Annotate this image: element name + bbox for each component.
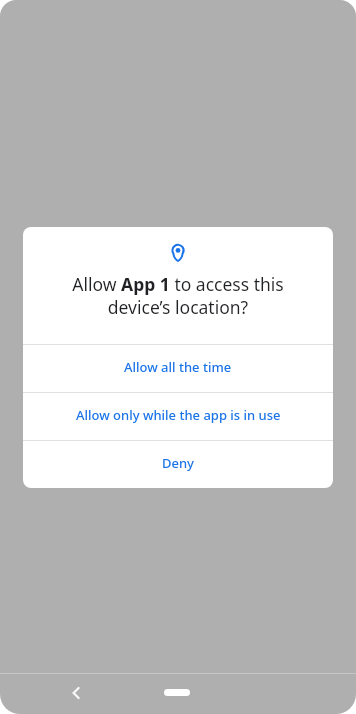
button[interactable]: Allow all the time <box>23 345 333 392</box>
button[interactable]: Deny <box>23 441 333 488</box>
staticText: Allow App 1 to access this device’s loca… <box>23 272 333 319</box>
button[interactable]: Allow only while the app is in use <box>23 393 333 440</box>
button[interactable] <box>164 689 190 696</box>
staticText: Allow only while the app is in use <box>76 406 281 424</box>
button[interactable] <box>62 679 90 707</box>
staticText: Allow all the time <box>124 358 232 376</box>
staticText: Deny <box>162 454 194 472</box>
